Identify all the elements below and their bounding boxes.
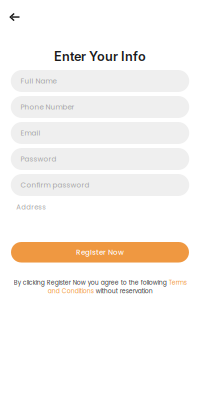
staticText: Enter Your Info — [54, 49, 146, 64]
staticText: Phone Number — [20, 102, 74, 112]
button[interactable]: Back — [0, 0, 26, 27]
button[interactable]: Confirm password — [11, 174, 189, 196]
staticText: Confirm password — [20, 180, 89, 190]
button[interactable]: Password — [11, 148, 189, 170]
button[interactable]: Full Name — [11, 70, 189, 92]
staticText: Address — [16, 202, 46, 212]
staticText: Email — [20, 128, 40, 138]
button[interactable]: Address — [0, 196, 200, 218]
button[interactable]: Register Now — [11, 242, 189, 262]
button[interactable]: Email — [11, 122, 189, 144]
staticText: Full Name — [20, 76, 56, 86]
button[interactable]: Phone Number — [11, 96, 189, 118]
staticText: By clicking Register Now you agree to th… — [13, 278, 186, 295]
staticText: Register Now — [76, 247, 124, 257]
staticText: Password — [20, 154, 56, 164]
